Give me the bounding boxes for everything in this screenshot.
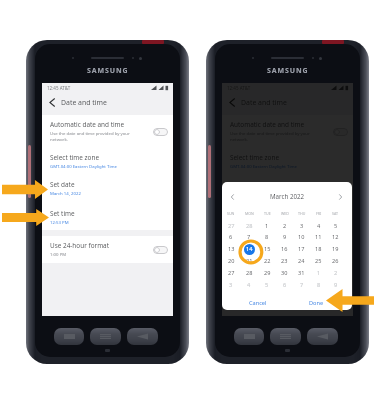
button[interactable]: 22 [258,255,276,267]
staticText: THU [298,211,306,216]
button[interactable]: Back [222,94,353,111]
button[interactable]: Recent apps [54,328,84,345]
staticText: GMT-04:00 Eastern Daylight Time [50,163,117,169]
button[interactable]: 13 [222,243,240,255]
button[interactable]: 18 [310,243,327,255]
button[interactable]: 16 [276,243,293,255]
button[interactable]: 3 [293,220,310,232]
staticText: 6 [283,281,287,289]
staticText: 22 [264,257,271,265]
button[interactable]: 15 [258,243,276,255]
button[interactable]: 27 [222,267,240,279]
staticText: March 14, 2022 [50,190,81,196]
button[interactable]: Home [270,328,301,345]
button[interactable]: Set date [222,180,353,198]
staticText: 15 [264,245,271,253]
button[interactable]: 25 [310,255,327,267]
button[interactable]: Use 24-hour format [42,241,173,259]
staticText: March 14, 2022 [230,190,261,196]
button[interactable]: 6 [222,231,240,243]
button[interactable]: 7 [293,279,310,291]
button[interactable]: 29 [258,267,276,279]
button[interactable]: 7 [240,231,258,243]
button[interactable]: 31 [293,267,310,279]
button[interactable]: 26 [327,255,344,267]
button[interactable]: 9 [276,231,293,243]
button[interactable]: 28 [240,220,258,232]
staticText: 23 [281,257,288,265]
staticText: Use the date and time provided by your [50,130,130,136]
button[interactable]: 24 [293,255,310,267]
button[interactable]: 12 [327,231,344,243]
button[interactable]: 17 [293,243,310,255]
button[interactable]: 27 [222,220,240,232]
button[interactable]: 8 [258,231,276,243]
button[interactable]: 8 [310,279,327,291]
button[interactable]: Select time zone [222,153,353,171]
staticText: network. [50,136,68,142]
button[interactable]: 19 [327,243,344,255]
staticText: FRI [316,211,322,216]
button[interactable]: Set date [42,180,173,198]
staticText: 19 [332,245,339,253]
staticText: 12:53 PM [50,219,69,225]
button[interactable]: Done [305,296,327,310]
button[interactable]: Back [42,94,173,111]
staticText: 7 [300,281,304,289]
button[interactable]: Automatic date and time [42,120,173,144]
button[interactable]: Next month [336,192,345,201]
button[interactable]: Automatic date and time [222,120,353,144]
button[interactable]: Previous month [228,192,237,201]
button[interactable]: 4 [310,220,327,232]
staticText: SAT [332,211,339,216]
button[interactable]: Toggle Automatic date and time [153,128,168,136]
button[interactable]: Back [307,328,338,345]
button[interactable]: Use 24-hour format [222,241,353,259]
button[interactable]: Home [90,328,121,345]
staticText: 18 [315,245,322,253]
staticText: 29 [264,269,271,277]
staticText: Use 24-hour format [50,241,110,250]
button[interactable]: 9 [327,279,344,291]
staticText: Use 24-hour format [230,241,290,250]
button[interactable]: Cancel [246,296,270,310]
staticText: 3 [300,222,304,230]
button[interactable]: 10 [293,231,310,243]
button[interactable]: 14 [240,243,258,255]
button[interactable]: 30 [276,267,293,279]
button[interactable]: Back [127,328,158,345]
staticText: 8 [265,233,269,241]
button[interactable]: 5 [258,279,276,291]
button[interactable]: 2 [276,220,293,232]
button[interactable]: 2 [327,267,344,279]
staticText: 9 [283,233,287,241]
staticText: 2 [283,222,287,230]
staticText: 31 [298,269,305,277]
staticText: 12:53 PM [230,219,249,225]
staticText: 14 [246,245,253,253]
button[interactable]: 20 [222,255,240,267]
staticText: 28 [246,222,253,230]
button[interactable]: 23 [276,255,293,267]
staticText: 2 [334,269,338,277]
button[interactable]: 4 [240,279,258,291]
button[interactable]: 11 [310,231,327,243]
button[interactable]: Set time [42,209,173,227]
button[interactable]: Toggle Use 24-hour format [333,246,348,254]
button[interactable]: Recent apps [234,328,264,345]
button[interactable]: Toggle Use 24-hour format [153,246,168,254]
staticText: 20 [228,257,235,265]
button[interactable]: 21 [240,255,258,267]
button[interactable]: 5 [327,220,344,232]
button[interactable]: Select time zone [42,153,173,171]
button[interactable]: 6 [276,279,293,291]
button[interactable]: 3 [222,279,240,291]
staticText: SUN [227,211,235,216]
other: Back [229,98,235,107]
button[interactable]: 1 [258,220,276,232]
button[interactable]: 1 [310,267,327,279]
button[interactable]: Set time [222,209,353,227]
button[interactable]: 28 [240,267,258,279]
staticText: 4 [317,222,321,230]
